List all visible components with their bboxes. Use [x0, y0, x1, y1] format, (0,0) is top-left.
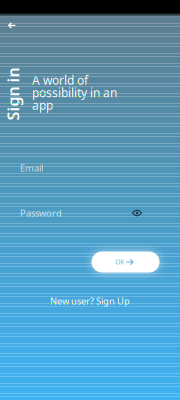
button[interactable]: Email: [20, 159, 150, 177]
staticText: Email: [20, 162, 43, 174]
button[interactable]: Show password: [127, 204, 147, 222]
staticText: possibility in an: [32, 84, 117, 100]
staticText: Password: [20, 207, 62, 219]
staticText: Sign in: [0, 83, 39, 105]
staticText: A world of: [32, 72, 88, 88]
staticText: app: [32, 97, 53, 113]
button[interactable]: New user? Sign Up: [35, 294, 145, 308]
staticText: OK: [115, 258, 124, 266]
button[interactable]: Back: [1, 14, 23, 36]
button[interactable]: OK: [91, 251, 159, 272]
staticText: New user? Sign Up: [50, 295, 130, 307]
button[interactable]: Password: [20, 204, 150, 222]
